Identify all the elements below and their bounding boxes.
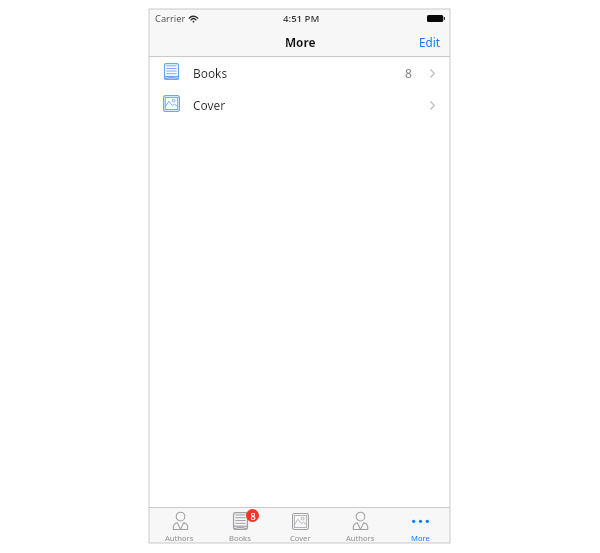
button[interactable]: Books	[149, 57, 450, 89]
staticText: More	[285, 34, 316, 50]
button[interactable]: Cover	[149, 89, 450, 121]
staticText: Cover	[193, 97, 226, 113]
button[interactable]: Edit	[409, 29, 450, 55]
staticText: Authors	[346, 533, 375, 543]
staticText: Carrier	[155, 12, 186, 25]
staticText: Books	[193, 65, 228, 81]
staticText: 8	[250, 510, 256, 522]
button[interactable]: Authors	[330, 508, 390, 543]
staticText: More	[411, 533, 430, 543]
button[interactable]: Authors	[149, 508, 210, 543]
staticText: Books	[229, 533, 251, 543]
staticText: Edit	[419, 34, 440, 50]
button[interactable]: Books	[210, 508, 270, 543]
staticText: Authors	[165, 533, 194, 543]
staticText: 4:51 PM	[283, 12, 320, 25]
button[interactable]: More	[390, 508, 450, 543]
button[interactable]: Cover	[270, 508, 330, 543]
staticText: Cover	[290, 533, 311, 543]
staticText: 8	[405, 65, 412, 81]
